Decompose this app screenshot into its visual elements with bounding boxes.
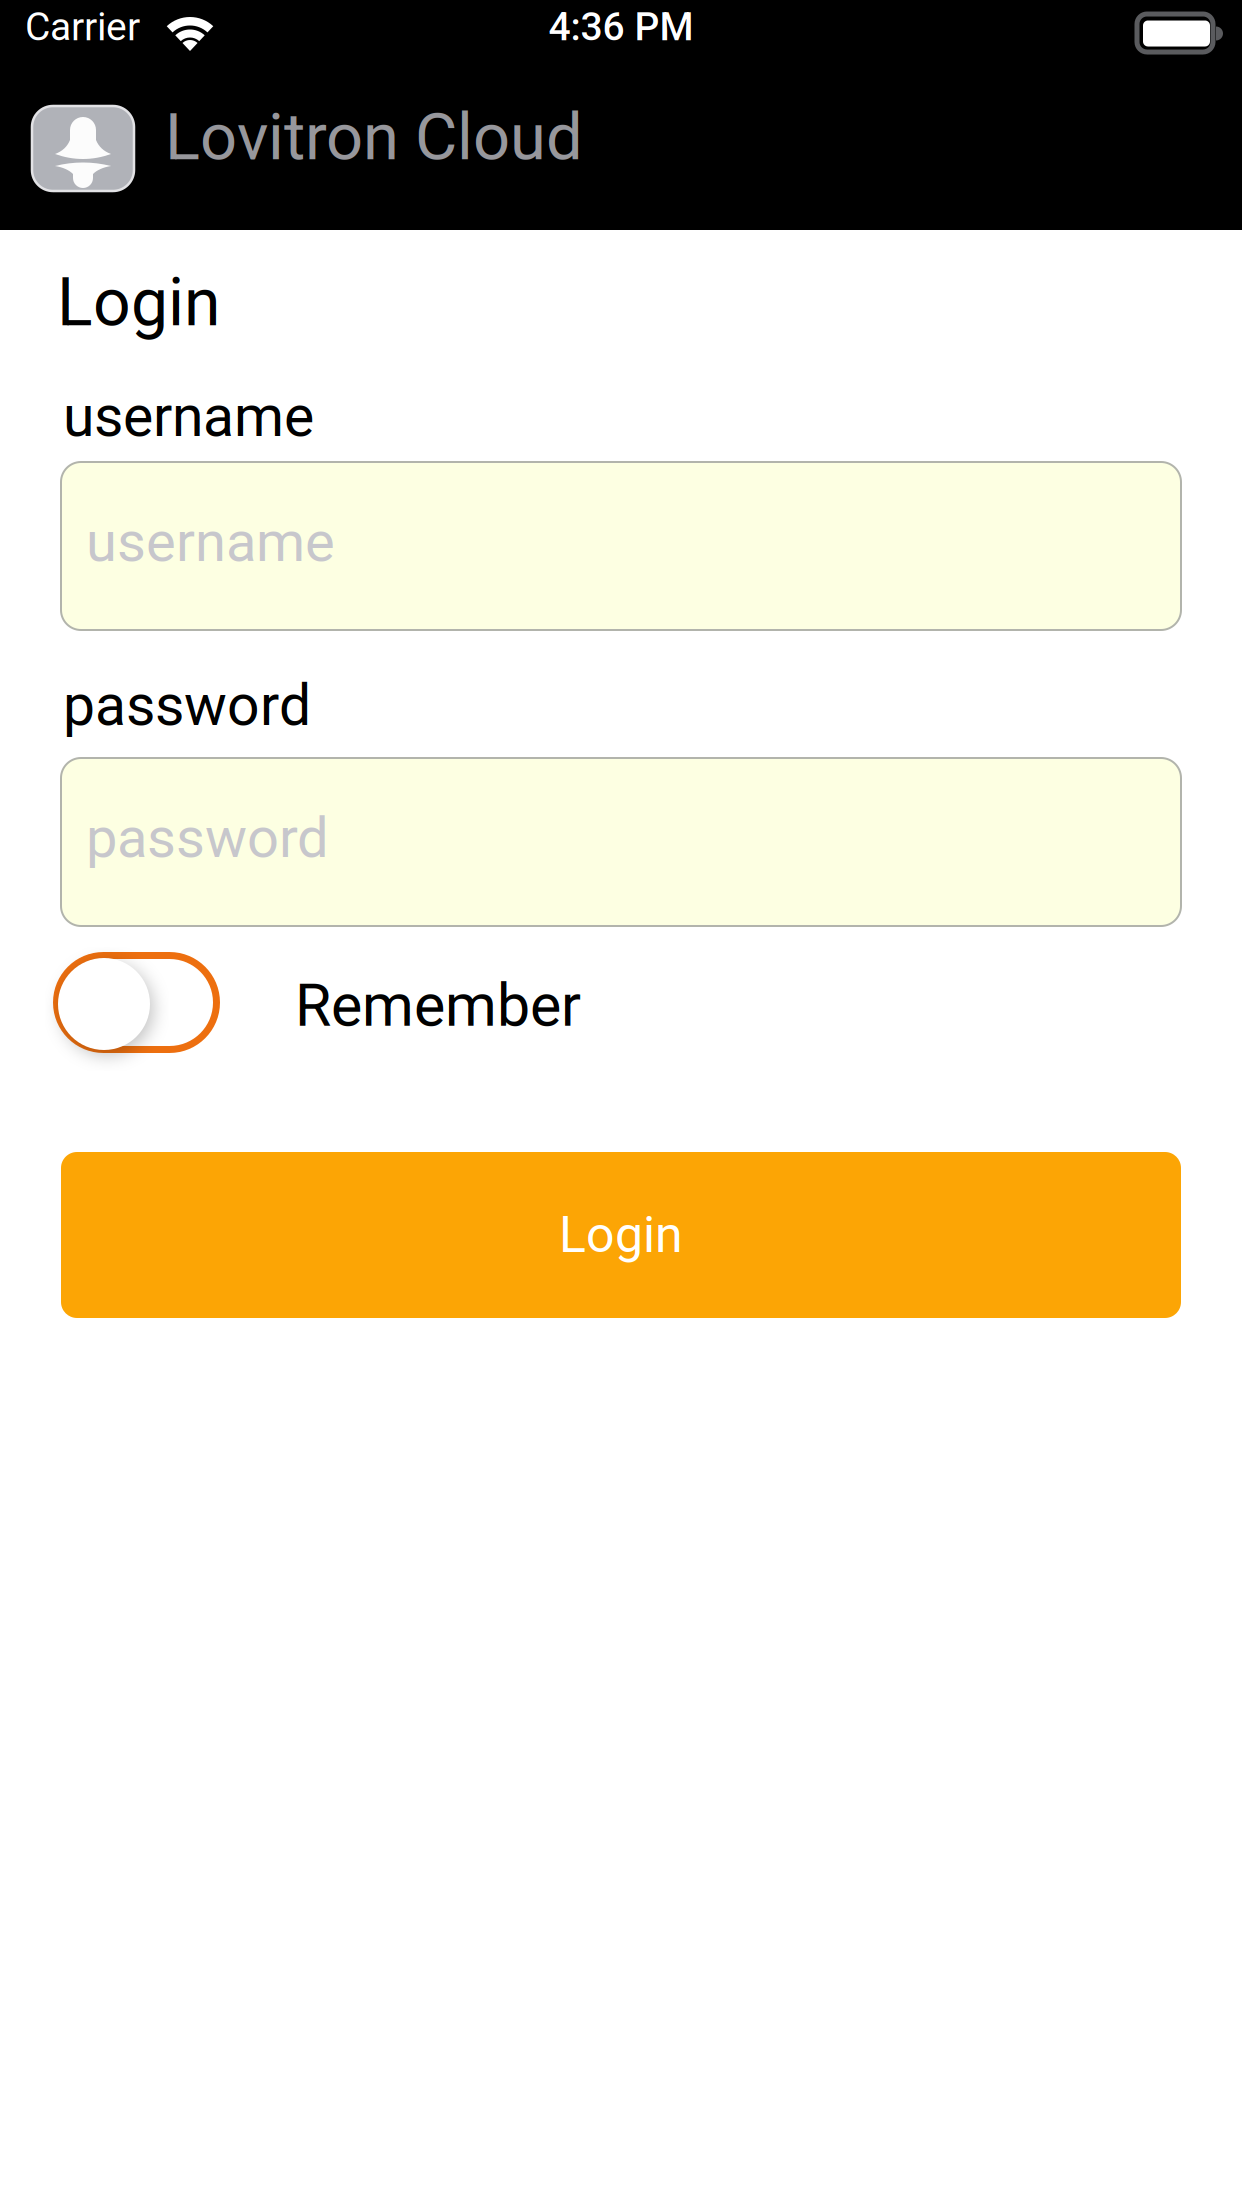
staticText: Carrier xyxy=(25,4,140,50)
staticText: Lovitron Cloud xyxy=(165,99,583,175)
button[interactable]: Remember xyxy=(53,952,220,1053)
staticText: Login xyxy=(57,264,220,341)
button[interactable]: username xyxy=(61,462,1181,630)
staticText: Remember xyxy=(295,971,581,1040)
staticText: 4:36 PM xyxy=(548,4,693,50)
staticText: password xyxy=(63,672,311,739)
staticText: username xyxy=(86,509,335,575)
button[interactable]: password xyxy=(61,758,1181,926)
staticText: username xyxy=(63,383,314,450)
staticText: password xyxy=(86,805,329,871)
staticText: Login xyxy=(559,1206,683,1264)
button[interactable]: Login xyxy=(61,1152,1181,1318)
